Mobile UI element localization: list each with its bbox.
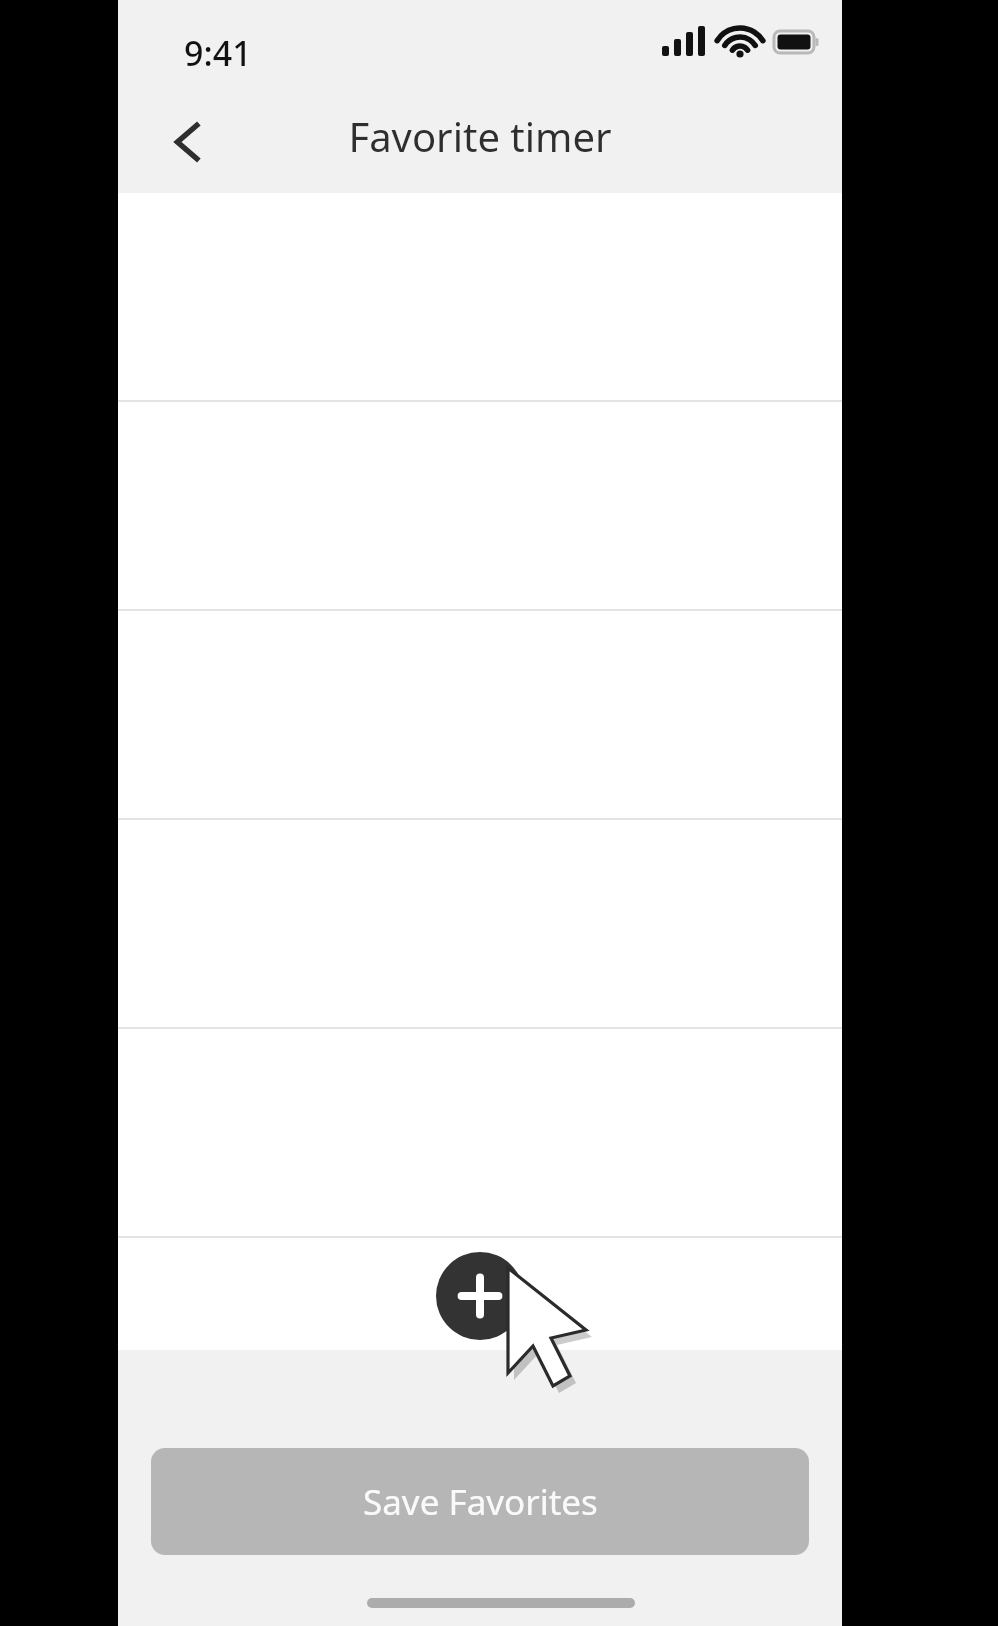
button[interactable]: Save Favorites: [151, 1448, 809, 1555]
button[interactable]: Add favorite timer: [436, 1252, 524, 1340]
staticText: Favorite timer: [118, 109, 842, 163]
button[interactable]: Back: [146, 100, 230, 184]
staticText: 9:41: [184, 30, 252, 76]
staticText: Save Favorites: [363, 1478, 598, 1526]
